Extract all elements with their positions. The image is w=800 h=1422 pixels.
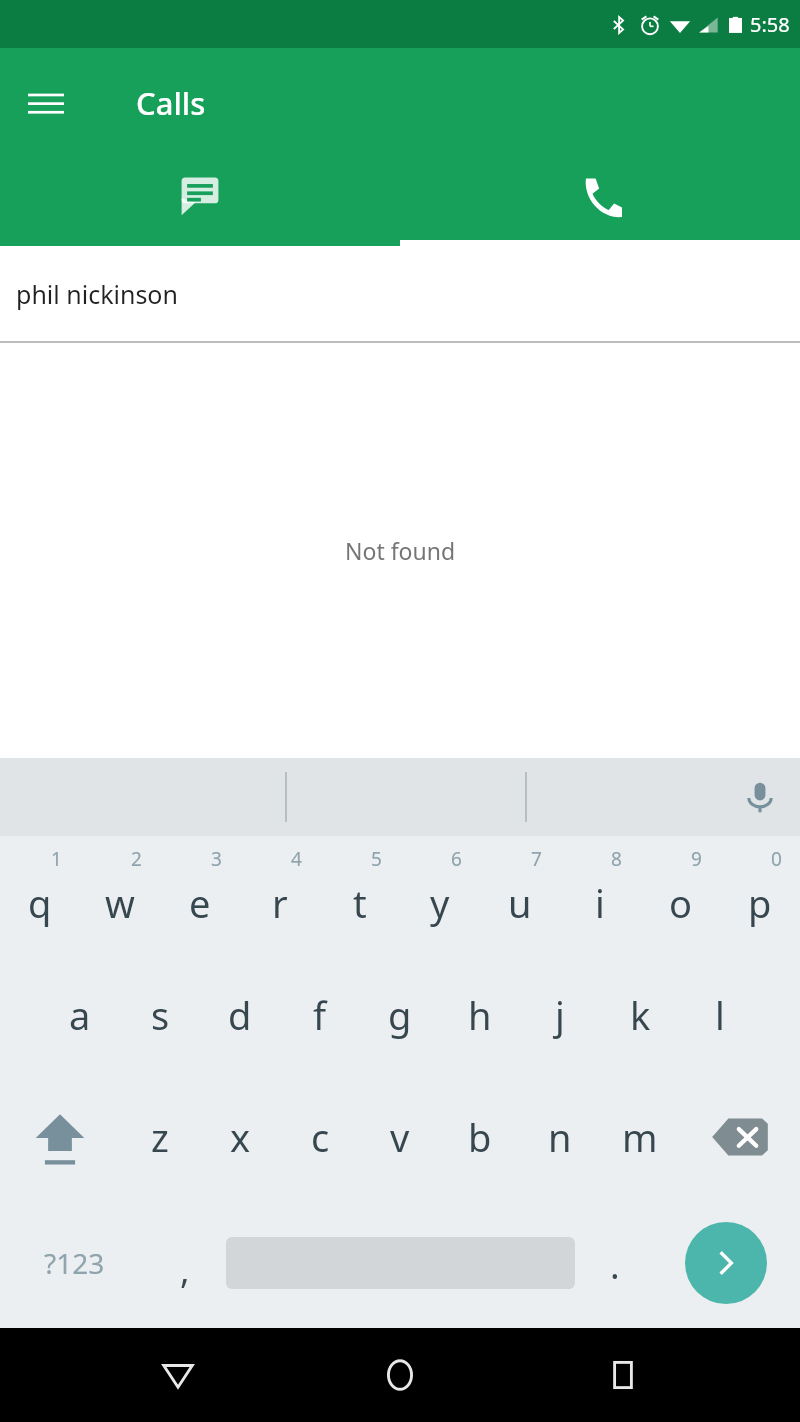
staticText: j (555, 989, 565, 1041)
staticText: b (468, 1111, 492, 1163)
button[interactable]: 5 (320, 836, 400, 954)
staticText: q (28, 877, 52, 929)
button[interactable]: 4 (240, 836, 320, 954)
button[interactable]: Open navigation menu (18, 75, 74, 131)
button[interactable]: Back (133, 1330, 223, 1420)
staticText: h (468, 989, 492, 1041)
staticText: 5:58 (750, 11, 790, 38)
staticText: o (669, 877, 692, 929)
staticText: 2 (131, 846, 142, 872)
button[interactable]: Shift (0, 1076, 120, 1198)
staticText: d (228, 989, 252, 1041)
button[interactable]: 2 (80, 836, 160, 954)
button[interactable]: x (200, 1076, 280, 1198)
button[interactable]: c (280, 1076, 360, 1198)
staticText: z (151, 1111, 169, 1163)
button[interactable]: 3 (160, 836, 240, 954)
staticText: c (311, 1111, 330, 1163)
staticText: Not found (345, 535, 456, 566)
staticText: a (69, 989, 91, 1041)
button[interactable]: 6 (400, 836, 480, 954)
staticText: i (595, 877, 605, 929)
button[interactable]: s (120, 954, 200, 1076)
button[interactable]: Calls tab (400, 158, 800, 246)
staticText: s (151, 989, 170, 1041)
button[interactable]: ?123 (0, 1198, 148, 1328)
staticText: m (622, 1111, 658, 1163)
staticText: y (430, 877, 450, 929)
button[interactable]: Space (222, 1198, 578, 1328)
staticText: 7 (531, 846, 542, 872)
staticText: , (180, 1245, 190, 1294)
button[interactable]: 9 (640, 836, 720, 954)
staticText: Calls (136, 82, 206, 124)
button[interactable]: Messages tab (0, 158, 400, 246)
staticText: 4 (291, 846, 302, 872)
button[interactable]: Home (355, 1330, 445, 1420)
button[interactable]: Enter (652, 1198, 800, 1328)
button[interactable]: z (120, 1076, 200, 1198)
staticText: ?123 (44, 1244, 105, 1282)
staticText: n (548, 1111, 572, 1163)
button[interactable]: v (360, 1076, 440, 1198)
button[interactable]: n (520, 1076, 600, 1198)
staticText: 3 (211, 846, 222, 872)
staticText: l (715, 989, 725, 1041)
button[interactable]: phil nickinson (0, 246, 800, 341)
staticText: 5 (371, 846, 382, 872)
button[interactable]: k (600, 954, 680, 1076)
staticText: p (748, 877, 772, 929)
button[interactable]: Backspace (680, 1076, 800, 1198)
staticText: w (105, 877, 135, 929)
staticText: t (353, 877, 367, 929)
button[interactable]: , (148, 1198, 222, 1328)
button[interactable]: 7 (480, 836, 560, 954)
staticText: x (230, 1111, 251, 1163)
staticText: r (272, 877, 288, 929)
staticText: 1 (51, 846, 62, 872)
button[interactable]: h (440, 954, 520, 1076)
button[interactable]: d (200, 954, 280, 1076)
staticText: phil nickinson (16, 277, 178, 311)
button[interactable]: f (280, 954, 360, 1076)
staticText: 6 (451, 846, 462, 872)
button[interactable]: Voice input (732, 769, 788, 825)
staticText: v (390, 1111, 410, 1163)
button[interactable]: g (360, 954, 440, 1076)
button[interactable]: b (440, 1076, 520, 1198)
staticText: f (313, 989, 327, 1041)
staticText: 0 (771, 846, 782, 872)
button[interactable]: l (680, 954, 760, 1076)
staticText: u (508, 877, 532, 929)
button[interactable]: 0 (720, 836, 800, 954)
staticText: k (630, 989, 651, 1041)
staticText: 9 (691, 846, 702, 872)
staticText: . (610, 1241, 620, 1290)
button[interactable]: a (40, 954, 120, 1076)
button[interactable]: 1 (0, 836, 80, 954)
staticText: 8 (611, 846, 622, 872)
staticText: g (388, 989, 412, 1041)
button[interactable]: . (578, 1198, 652, 1328)
button[interactable]: m (600, 1076, 680, 1198)
staticText: e (189, 877, 211, 929)
button[interactable]: 8 (560, 836, 640, 954)
button[interactable]: Recent apps (578, 1330, 668, 1420)
button[interactable]: j (520, 954, 600, 1076)
